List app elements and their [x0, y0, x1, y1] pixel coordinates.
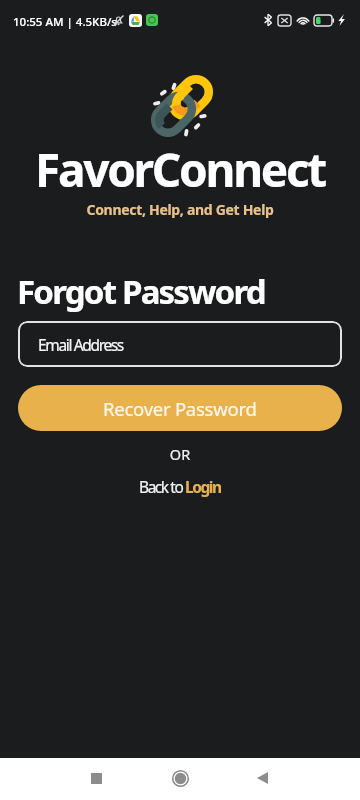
- button[interactable]: Recover Password: [18, 385, 342, 431]
- staticText: OR: [0, 444, 360, 464]
- staticText: Forgot Password: [17, 269, 265, 314]
- staticText: FavorConnect: [0, 138, 360, 201]
- staticText: 15: [319, 16, 328, 26]
- staticText: Email Address: [38, 334, 123, 355]
- button[interactable]: Login: [185, 476, 221, 497]
- button[interactable]: Back: [242, 758, 282, 800]
- staticText: 10:55 AM | 4.5KB/s: [13, 14, 117, 30]
- staticText: Connect, Help, and Get Help: [0, 200, 360, 219]
- staticText: Login: [185, 476, 221, 497]
- button[interactable]: Recent apps: [76, 758, 116, 800]
- staticText: Back to: [139, 476, 185, 497]
- staticText: Recover Password: [103, 396, 257, 421]
- button[interactable]: Home: [160, 758, 200, 800]
- button[interactable]: Email Address: [18, 321, 342, 367]
